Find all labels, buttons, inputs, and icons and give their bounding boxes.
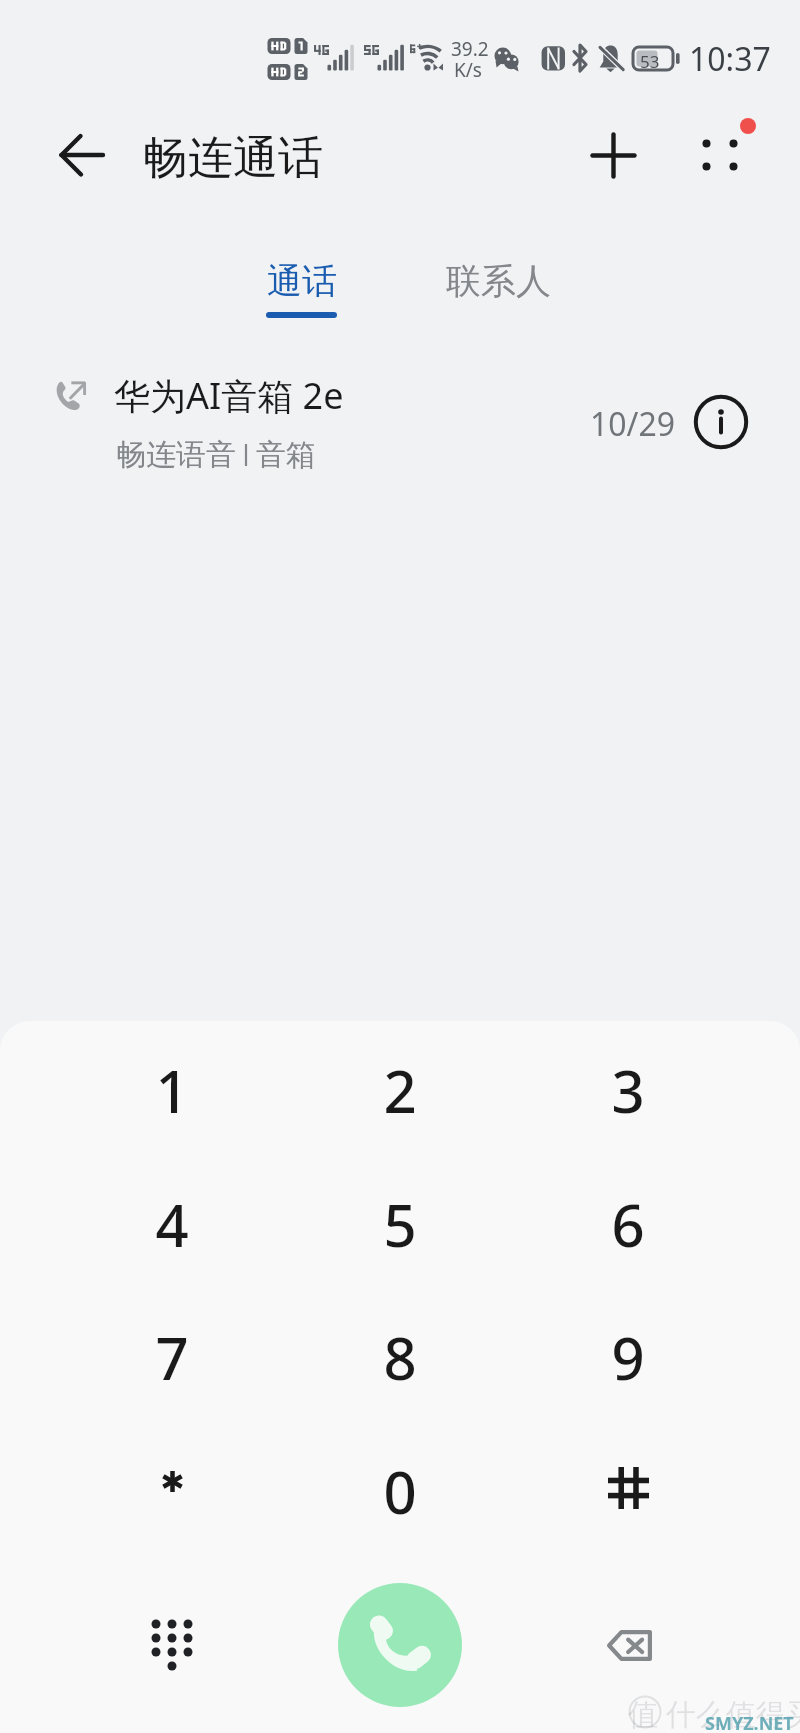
- button[interactable]: Back: [34, 107, 130, 203]
- staticText: 5: [383, 1185, 417, 1264]
- staticText: 8: [383, 1318, 417, 1397]
- staticText: 3: [611, 1051, 645, 1130]
- button[interactable]: 华为AI音箱 2e: [0, 352, 800, 492]
- button[interactable]: 联系人: [412, 215, 584, 325]
- staticText: 53: [640, 50, 660, 73]
- button[interactable]: 5: [338, 1178, 462, 1270]
- staticText: 音箱: [256, 436, 316, 474]
- button[interactable]: Keypad: [112, 1585, 232, 1705]
- staticText: 畅连语音: [116, 436, 236, 474]
- button[interactable]: 通话: [215, 215, 387, 325]
- button[interactable]: 0: [338, 1445, 462, 1537]
- staticText: 畅连通话: [143, 130, 323, 187]
- staticText: 值 什么值得买: [628, 1693, 800, 1733]
- staticText: 2: [383, 1051, 417, 1130]
- button[interactable]: 3: [566, 1044, 690, 1136]
- staticText: 9: [611, 1318, 645, 1397]
- button[interactable]: [566, 1445, 690, 1537]
- button[interactable]: 2: [338, 1044, 462, 1136]
- button[interactable]: Call: [338, 1583, 462, 1707]
- button[interactable]: 6: [566, 1178, 690, 1270]
- button[interactable]: 9: [566, 1311, 690, 1403]
- staticText: 通话: [267, 259, 337, 303]
- staticText: 6: [611, 1185, 645, 1264]
- button[interactable]: Add: [565, 107, 661, 203]
- staticText: 7: [155, 1318, 189, 1397]
- staticText: 39.2: [451, 36, 489, 62]
- staticText: 10/29: [590, 402, 676, 446]
- staticText: K/s: [454, 57, 482, 83]
- staticText: 0: [383, 1452, 417, 1531]
- button[interactable]: [110, 1445, 234, 1537]
- button[interactable]: 7: [110, 1311, 234, 1403]
- staticText: 1: [155, 1051, 189, 1130]
- staticText: 10:37: [689, 37, 771, 81]
- staticText: 华为AI音箱 2e: [114, 371, 344, 420]
- button[interactable]: 1: [110, 1044, 234, 1136]
- button[interactable]: Backspace: [568, 1607, 690, 1683]
- staticText: SMYZ.NET: [705, 1711, 794, 1733]
- button[interactable]: 8: [338, 1311, 462, 1403]
- staticText: 4: [155, 1185, 189, 1264]
- button[interactable]: More options: [672, 107, 768, 203]
- button[interactable]: 4: [110, 1178, 234, 1270]
- button[interactable]: Call details: [688, 389, 754, 455]
- staticText: 联系人: [446, 259, 551, 303]
